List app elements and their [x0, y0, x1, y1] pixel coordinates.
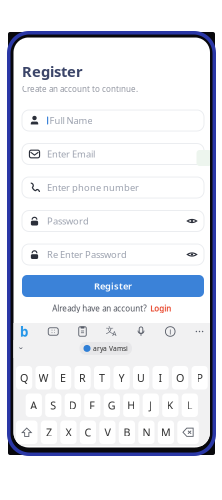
staticText: Register [22, 61, 83, 81]
staticText: M [161, 425, 171, 439]
button[interactable]: J [143, 393, 159, 417]
staticText: G [108, 398, 116, 412]
staticText: 文 [106, 325, 114, 335]
button[interactable]: O [172, 366, 188, 389]
button[interactable]: arya Vamsi [79, 342, 132, 355]
staticText: Password [47, 215, 89, 227]
button[interactable]: T [94, 366, 110, 389]
staticText: L [187, 398, 193, 412]
button[interactable]: Password [22, 210, 204, 231]
button[interactable]: Login [150, 303, 171, 314]
button[interactable]: D [65, 393, 81, 417]
button[interactable]: Register [22, 275, 204, 297]
button[interactable]: U [133, 366, 149, 389]
button[interactable]: X [60, 420, 76, 444]
button[interactable]: F [84, 393, 100, 417]
staticText: Register [94, 280, 132, 292]
staticText: T [99, 371, 105, 385]
staticText: K [167, 398, 174, 412]
button[interactable]: B [119, 420, 135, 444]
staticText: Q [20, 371, 28, 385]
button[interactable]: Emoji [46, 324, 61, 339]
button[interactable]: A [26, 393, 42, 417]
button[interactable]: Clipboard [75, 324, 90, 339]
staticText: b [20, 323, 28, 340]
staticText: B [123, 425, 130, 439]
button[interactable]: More [192, 324, 207, 339]
button[interactable]: Voice input [133, 324, 148, 339]
staticText: ∷ [51, 328, 55, 335]
button[interactable]: I [152, 366, 169, 389]
staticText: S [50, 398, 56, 412]
staticText: W [39, 371, 49, 385]
staticText: Z [46, 425, 52, 439]
button[interactable]: V [99, 420, 115, 444]
staticText: U [137, 371, 145, 385]
staticText: X [65, 425, 71, 439]
button[interactable]: H [123, 393, 139, 417]
button[interactable]: S [45, 393, 61, 417]
button[interactable]: M [158, 420, 174, 444]
staticText: arya Vamsi [93, 344, 128, 353]
staticText: J [149, 398, 152, 412]
button[interactable]: W [35, 366, 52, 389]
button[interactable]: C [80, 420, 96, 444]
staticText: C [84, 425, 91, 439]
staticText: N [142, 425, 150, 439]
staticText: D [69, 398, 77, 412]
button[interactable]: Z [41, 420, 57, 444]
button[interactable]: P [191, 366, 208, 389]
staticText: ⌄ [17, 342, 24, 351]
staticText: Enter phone number [47, 181, 139, 194]
button[interactable]: Enter phone number [22, 177, 204, 198]
staticText: Enter Email [47, 148, 95, 160]
button[interactable]: Info [163, 324, 178, 339]
button[interactable]: K [162, 393, 178, 417]
staticText: F [89, 398, 95, 412]
staticText: A [30, 398, 37, 412]
staticText: Y [119, 371, 125, 385]
button[interactable]: E [55, 366, 71, 389]
staticText: i [169, 326, 171, 337]
staticText: A [112, 329, 116, 338]
staticText: Create an account to continue. [22, 83, 138, 94]
staticText: Login [150, 303, 171, 314]
button[interactable]: Bing search [16, 324, 31, 339]
staticText: V [104, 425, 110, 439]
button[interactable]: Full Name [22, 110, 204, 131]
button[interactable]: G [104, 393, 120, 417]
button[interactable]: Enter Email [22, 143, 204, 164]
button[interactable]: Delete [177, 420, 199, 444]
staticText: Already have an account? [52, 303, 146, 314]
button[interactable]: N [138, 420, 154, 444]
staticText: I [159, 371, 163, 385]
staticText: H [127, 398, 135, 412]
button[interactable]: Y [113, 366, 130, 389]
button[interactable]: Translate [104, 324, 119, 339]
button[interactable]: Shift [16, 420, 37, 444]
staticText: P [197, 371, 203, 385]
staticText: R [79, 371, 86, 385]
button[interactable]: Q [16, 366, 32, 389]
button[interactable]: Re Enter Password [22, 244, 204, 265]
button[interactable]: L [182, 393, 198, 417]
staticText: E [60, 371, 66, 385]
staticText: Full Name [49, 114, 92, 127]
button[interactable]: R [74, 366, 91, 389]
staticText: O [176, 371, 184, 385]
staticText: Re Enter Password [47, 248, 127, 261]
